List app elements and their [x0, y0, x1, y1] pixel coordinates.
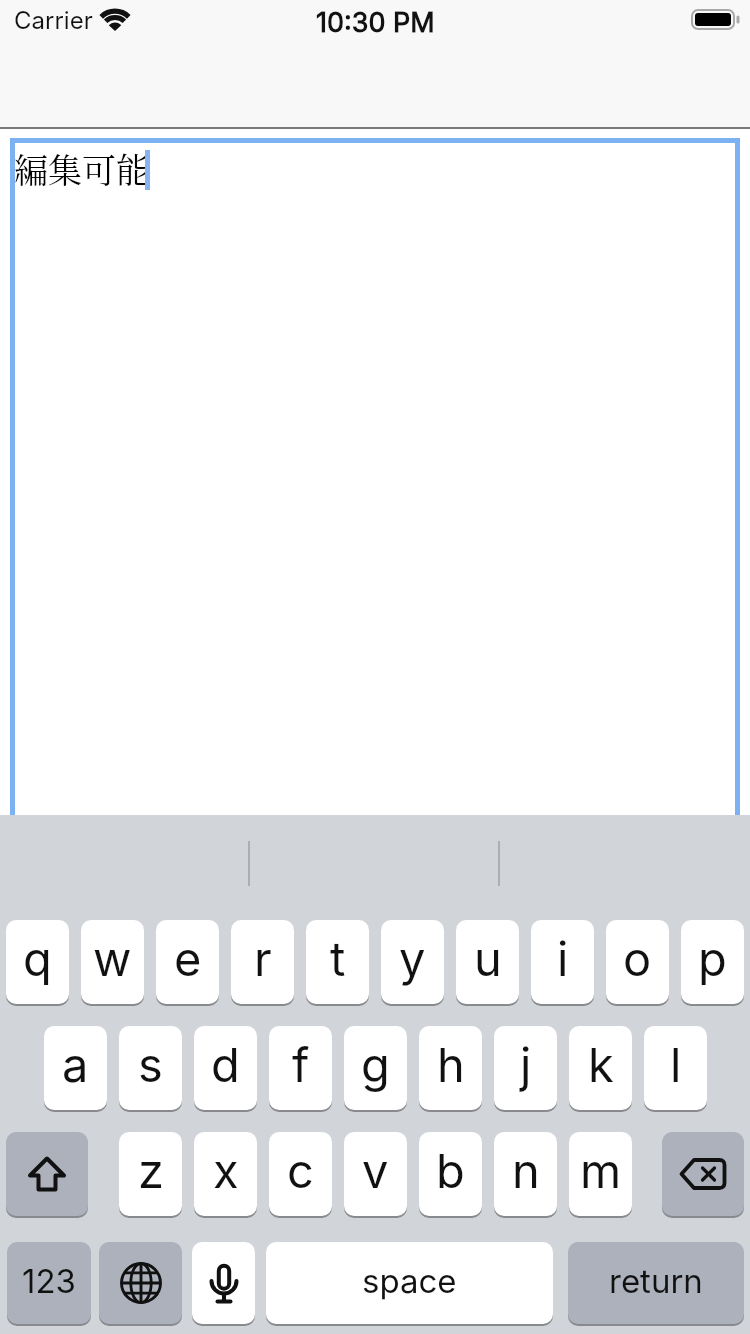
button[interactable]: r	[231, 920, 294, 1004]
button[interactable]	[662, 1132, 744, 1216]
button[interactable]: v	[344, 1132, 407, 1216]
staticText: a	[62, 1036, 89, 1093]
button[interactable]: c	[269, 1132, 332, 1216]
staticText: x	[213, 1142, 239, 1199]
staticText: h	[437, 1036, 465, 1093]
button[interactable]: p	[681, 920, 744, 1004]
staticText: 10:30 PM	[316, 6, 435, 34]
staticText: l	[670, 1036, 682, 1093]
button[interactable]	[192, 1242, 255, 1324]
staticText: u	[474, 930, 502, 987]
button[interactable]: j	[494, 1026, 557, 1110]
button[interactable]: f	[269, 1026, 332, 1110]
staticText: 編集可能	[14, 144, 150, 193]
staticText: k	[588, 1036, 614, 1093]
button[interactable]: u	[456, 920, 519, 1004]
button[interactable]: 編集可能	[10, 138, 740, 1334]
staticText: v	[362, 1142, 389, 1199]
button[interactable]: q	[6, 920, 69, 1004]
staticText: z	[138, 1142, 164, 1199]
button[interactable]: m	[569, 1132, 632, 1216]
staticText: n	[512, 1142, 540, 1199]
button[interactable]: z	[119, 1132, 182, 1216]
button[interactable]: g	[344, 1026, 407, 1110]
button[interactable]: space	[266, 1242, 553, 1324]
button[interactable]: b	[419, 1132, 482, 1216]
button[interactable]: x	[194, 1132, 257, 1216]
staticText: 123	[22, 1261, 76, 1301]
button[interactable]: a	[44, 1026, 107, 1110]
button[interactable]: o	[606, 920, 669, 1004]
staticText: d	[211, 1036, 240, 1093]
staticText: q	[23, 930, 52, 987]
button[interactable]: y	[381, 920, 444, 1004]
staticText: b	[436, 1142, 465, 1199]
button[interactable]: return	[568, 1242, 744, 1324]
button[interactable]: l	[644, 1026, 707, 1110]
staticText: return	[609, 1261, 703, 1301]
staticText: o	[623, 930, 652, 987]
staticText: r	[254, 930, 272, 987]
staticText: m	[580, 1142, 622, 1199]
staticText: s	[138, 1036, 163, 1093]
staticText: j	[520, 1036, 532, 1093]
button[interactable]: h	[419, 1026, 482, 1110]
staticText: Carrier	[14, 6, 93, 34]
button[interactable]: n	[494, 1132, 557, 1216]
button[interactable]: s	[119, 1026, 182, 1110]
staticText: w	[93, 930, 132, 987]
button[interactable]: t	[306, 920, 369, 1004]
staticText: p	[698, 930, 727, 987]
button[interactable]: w	[81, 920, 144, 1004]
staticText: i	[557, 930, 569, 987]
button[interactable]: 123	[7, 1242, 91, 1324]
button[interactable]: e	[156, 920, 219, 1004]
staticText: space	[362, 1261, 457, 1301]
staticText: g	[361, 1036, 390, 1093]
staticText: t	[330, 930, 346, 987]
button[interactable]: d	[194, 1026, 257, 1110]
button[interactable]: k	[569, 1026, 632, 1110]
button[interactable]	[99, 1242, 182, 1324]
staticText: c	[287, 1142, 314, 1199]
button[interactable]: i	[531, 920, 594, 1004]
staticText: y	[399, 930, 426, 987]
staticText: f	[292, 1036, 310, 1093]
button[interactable]	[6, 1132, 88, 1216]
staticText: e	[174, 930, 202, 987]
